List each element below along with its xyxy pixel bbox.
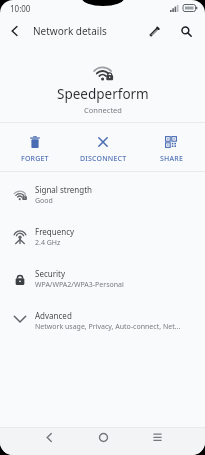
button[interactable]: DISCONNECT xyxy=(69,123,137,171)
button[interactable] xyxy=(40,428,59,447)
button[interactable] xyxy=(148,428,167,447)
staticText: Security xyxy=(35,268,66,279)
staticText: SHARE xyxy=(160,154,183,164)
button[interactable] xyxy=(141,18,167,44)
staticText: Network details xyxy=(33,24,107,38)
staticText: Good xyxy=(35,196,53,206)
button[interactable]: Advanced xyxy=(0,298,205,340)
button[interactable] xyxy=(173,18,199,44)
button[interactable] xyxy=(0,16,30,46)
staticText: Network usage, Privacy, Auto-connect, Ne… xyxy=(35,322,181,332)
staticText: DISCONNECT xyxy=(80,154,127,164)
staticText: 2.4 GHz xyxy=(35,238,61,248)
button[interactable]: FORGET xyxy=(0,123,69,171)
staticText: 10:00 xyxy=(10,3,31,14)
staticText: Signal strength xyxy=(35,184,93,195)
button[interactable]: SHARE xyxy=(137,123,205,171)
button[interactable]: Security xyxy=(0,256,205,298)
staticText: FORGET xyxy=(21,154,49,164)
staticText: Advanced xyxy=(35,310,72,321)
staticText: Frequency xyxy=(35,226,75,237)
staticText: WPA/WPA2/WPA3-Personal xyxy=(35,280,124,290)
staticText: Connected xyxy=(84,105,122,115)
button[interactable]: Speedperform xyxy=(0,46,205,122)
button[interactable]: Frequency xyxy=(0,214,205,256)
staticText: Speedperform xyxy=(57,85,149,103)
button[interactable] xyxy=(94,428,113,447)
button[interactable]: Signal strength xyxy=(0,172,205,214)
